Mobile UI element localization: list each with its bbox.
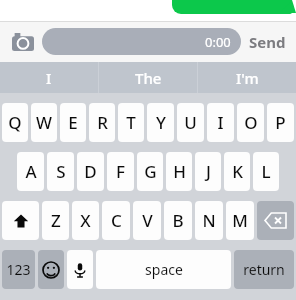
button[interactable]: I [207, 103, 234, 142]
staticText: P [275, 111, 286, 134]
staticText: Send [249, 32, 286, 52]
button[interactable]: B [164, 201, 192, 240]
staticText: space [145, 260, 183, 279]
button[interactable]: C [102, 201, 130, 240]
button[interactable]: return [234, 250, 294, 289]
button[interactable]: E [60, 103, 86, 142]
staticText: C [111, 209, 122, 232]
button[interactable]: N [195, 201, 223, 240]
button[interactable]: 123 [2, 250, 35, 289]
staticText: O [244, 111, 258, 134]
staticText: U [184, 111, 197, 134]
button[interactable]: Q [2, 103, 28, 142]
button[interactable]: O [237, 103, 264, 142]
button[interactable]: Backspace [257, 201, 294, 240]
staticText: M [232, 209, 248, 232]
button[interactable]: P [267, 103, 294, 142]
staticText: D [84, 160, 97, 183]
button[interactable]: X [72, 201, 99, 240]
button[interactable]: W [31, 103, 57, 142]
staticText: I [217, 111, 224, 134]
button[interactable]: M [226, 201, 254, 240]
staticText: K [232, 160, 243, 183]
button[interactable]: Shift [2, 201, 39, 240]
staticText: The [135, 68, 162, 88]
button[interactable]: L [253, 152, 279, 191]
staticText: E [68, 111, 78, 134]
button[interactable]: J [195, 152, 221, 191]
staticText: J [206, 160, 211, 183]
staticText: F [116, 160, 125, 183]
staticText: 0:00 [205, 33, 231, 51]
staticText: 123 [6, 260, 31, 279]
staticText: Z [51, 209, 61, 232]
button[interactable]: R [89, 103, 115, 142]
button[interactable]: F [107, 152, 134, 191]
staticText: L [261, 160, 271, 183]
staticText: H [173, 160, 186, 183]
button[interactable]: Z [42, 201, 69, 240]
staticText: X [80, 209, 91, 232]
staticText: B [172, 209, 184, 232]
button[interactable]: A [17, 152, 44, 191]
staticText: A [25, 160, 37, 183]
staticText: G [144, 160, 157, 183]
staticText: N [202, 209, 216, 232]
button[interactable]: Emoji [38, 250, 64, 289]
staticText: I [46, 68, 52, 88]
button[interactable]: Send [249, 32, 286, 52]
staticText: return [243, 260, 285, 279]
button[interactable]: space [96, 250, 231, 289]
button[interactable]: K [224, 152, 250, 191]
button[interactable]: G [137, 152, 163, 191]
staticText: V [142, 209, 153, 232]
button[interactable]: Y [147, 103, 174, 142]
button[interactable]: The [99, 62, 197, 93]
staticText: W [36, 111, 52, 134]
staticText: T [126, 111, 136, 134]
button[interactable]: Dictation [67, 250, 93, 289]
button[interactable]: V [133, 201, 161, 240]
button[interactable]: H [166, 152, 192, 191]
button[interactable]: T [118, 103, 144, 142]
button[interactable]: I'm [198, 62, 296, 93]
button[interactable]: U [177, 103, 204, 142]
button[interactable]: I [0, 62, 98, 93]
staticText: Y [156, 111, 166, 134]
staticText: R [97, 111, 108, 134]
staticText: Q [8, 111, 22, 134]
button[interactable]: D [77, 152, 104, 191]
button[interactable]: S [47, 152, 74, 191]
staticText: S [56, 160, 66, 183]
button[interactable]: 0:00 [42, 28, 241, 55]
staticText: I'm [236, 68, 259, 88]
button[interactable]: Camera [8, 27, 38, 57]
